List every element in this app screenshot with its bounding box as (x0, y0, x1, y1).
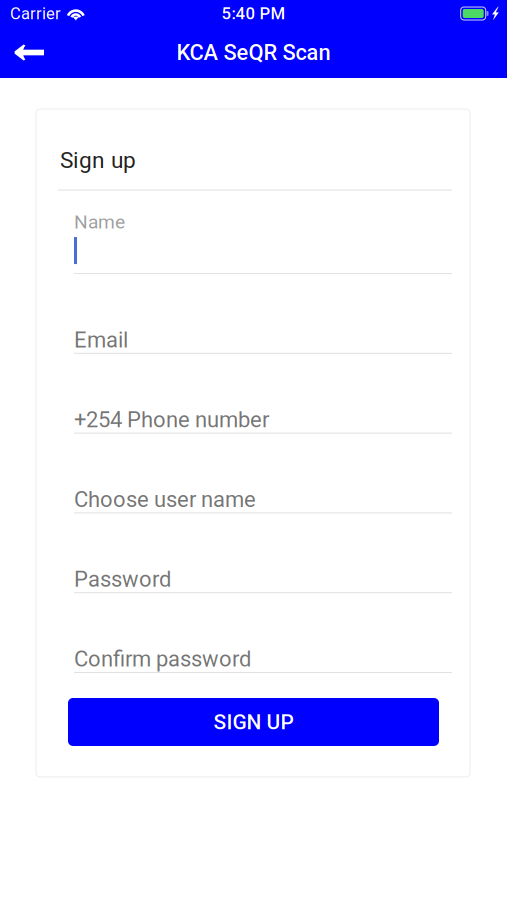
button[interactable]: Name (74, 191, 452, 274)
button[interactable]: Back (0, 27, 58, 78)
staticText: +254 Phone number (74, 407, 269, 433)
button[interactable]: Confirm password (74, 593, 452, 673)
button[interactable]: Password (74, 513, 452, 593)
button[interactable]: SIGN UP (68, 698, 439, 746)
staticText: SIGN UP (213, 710, 293, 734)
staticText: Confirm password (74, 646, 251, 672)
button[interactable]: +254 Phone number (74, 354, 452, 434)
staticText: Carrier (10, 4, 61, 23)
staticText: Sign up (60, 147, 136, 174)
staticText: Email (74, 327, 128, 353)
staticText: Password (74, 566, 171, 592)
button[interactable]: Email (74, 274, 452, 354)
staticText: Choose user name (74, 487, 256, 512)
staticText: Name (74, 211, 125, 233)
staticText: 5:40 PM (221, 4, 285, 23)
staticText: KCA SeQR Scan (176, 40, 330, 65)
button[interactable]: Choose user name (74, 434, 452, 513)
